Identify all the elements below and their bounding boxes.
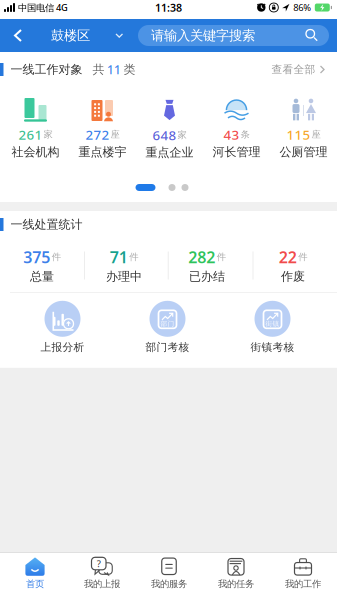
button[interactable]: 我的服务 [135, 557, 202, 590]
button[interactable]: 街镇 [220, 301, 325, 354]
staticText: 重点楼宇 [78, 145, 126, 159]
staticText: 一线工作对象 [10, 62, 82, 77]
staticText: 家 [177, 129, 186, 141]
button[interactable]: 搜索 [138, 25, 329, 46]
staticText: 11 [107, 61, 121, 77]
staticText: 条 [240, 129, 249, 140]
staticText: ? [97, 557, 101, 570]
staticText: 一线处置统计 [10, 217, 82, 232]
staticText: 座 [311, 129, 320, 140]
staticText: 272 [85, 126, 109, 143]
button[interactable]: 272 [69, 95, 136, 158]
staticText: 请输入关键字搜索 [151, 27, 255, 44]
staticText: 查看全部 [271, 63, 315, 76]
staticText: 座 [110, 129, 119, 140]
staticText: 已办结 [189, 269, 225, 284]
staticText: 22 [279, 246, 297, 268]
button[interactable]: 上报分析 [10, 301, 115, 354]
button[interactable]: 648 [136, 95, 203, 159]
staticText: 总量 [30, 269, 54, 284]
staticText: 类 [123, 62, 135, 77]
staticText: 重点企业 [145, 145, 193, 160]
staticText: 11:38 [155, 0, 182, 15]
staticText: 我的工作 [285, 578, 321, 590]
staticText: 648 [152, 126, 176, 144]
staticText: 86% [293, 1, 311, 14]
staticText: 街镇 [265, 320, 279, 328]
staticText: 115 [286, 126, 310, 143]
button[interactable]: 115 [270, 95, 337, 158]
button[interactable]: 查看全部 [271, 63, 337, 76]
staticText: 作废 [281, 269, 305, 284]
staticText: 中国电信 4G [18, 1, 68, 14]
staticText: 办理中 [106, 269, 142, 284]
staticText: 261 [18, 126, 42, 143]
button[interactable]: 261 [2, 95, 69, 158]
staticText: 件 [217, 251, 226, 263]
staticText: 公厕管理 [279, 145, 327, 159]
staticText: 282 [188, 246, 215, 268]
staticText: 43 [223, 126, 239, 143]
staticText: 鼓楼区 [51, 27, 90, 44]
staticText: 我的服务 [151, 578, 187, 590]
staticText: 部门 [160, 320, 174, 328]
staticText: 社会机构 [11, 145, 59, 159]
button[interactable]: 鼓楼区 [22, 27, 123, 44]
staticText: 件 [298, 251, 307, 263]
staticText: 河长管理 [212, 145, 260, 159]
staticText: 我的任务 [218, 578, 254, 590]
button[interactable]: 我的工作 [269, 557, 336, 590]
button[interactable]: ? [68, 557, 135, 590]
staticText: 71 [110, 246, 128, 268]
staticText: 首页 [26, 578, 44, 590]
button[interactable]: 返回 [0, 29, 22, 42]
staticText: 我的上报 [84, 578, 120, 590]
staticText: 上报分析 [40, 341, 84, 354]
button[interactable]: 部门 [115, 301, 220, 354]
button[interactable]: 首页 [1, 557, 68, 590]
staticText: 街镇考核 [250, 341, 294, 354]
button[interactable]: 43 [203, 95, 270, 158]
staticText: 375 [23, 246, 50, 268]
button[interactable]: 我的任务 [202, 557, 269, 590]
staticText: 共 [92, 62, 104, 77]
staticText: 部门考核 [145, 341, 189, 354]
staticText: 件 [52, 251, 61, 263]
staticText: 件 [129, 251, 138, 263]
staticText: 家 [43, 129, 52, 140]
